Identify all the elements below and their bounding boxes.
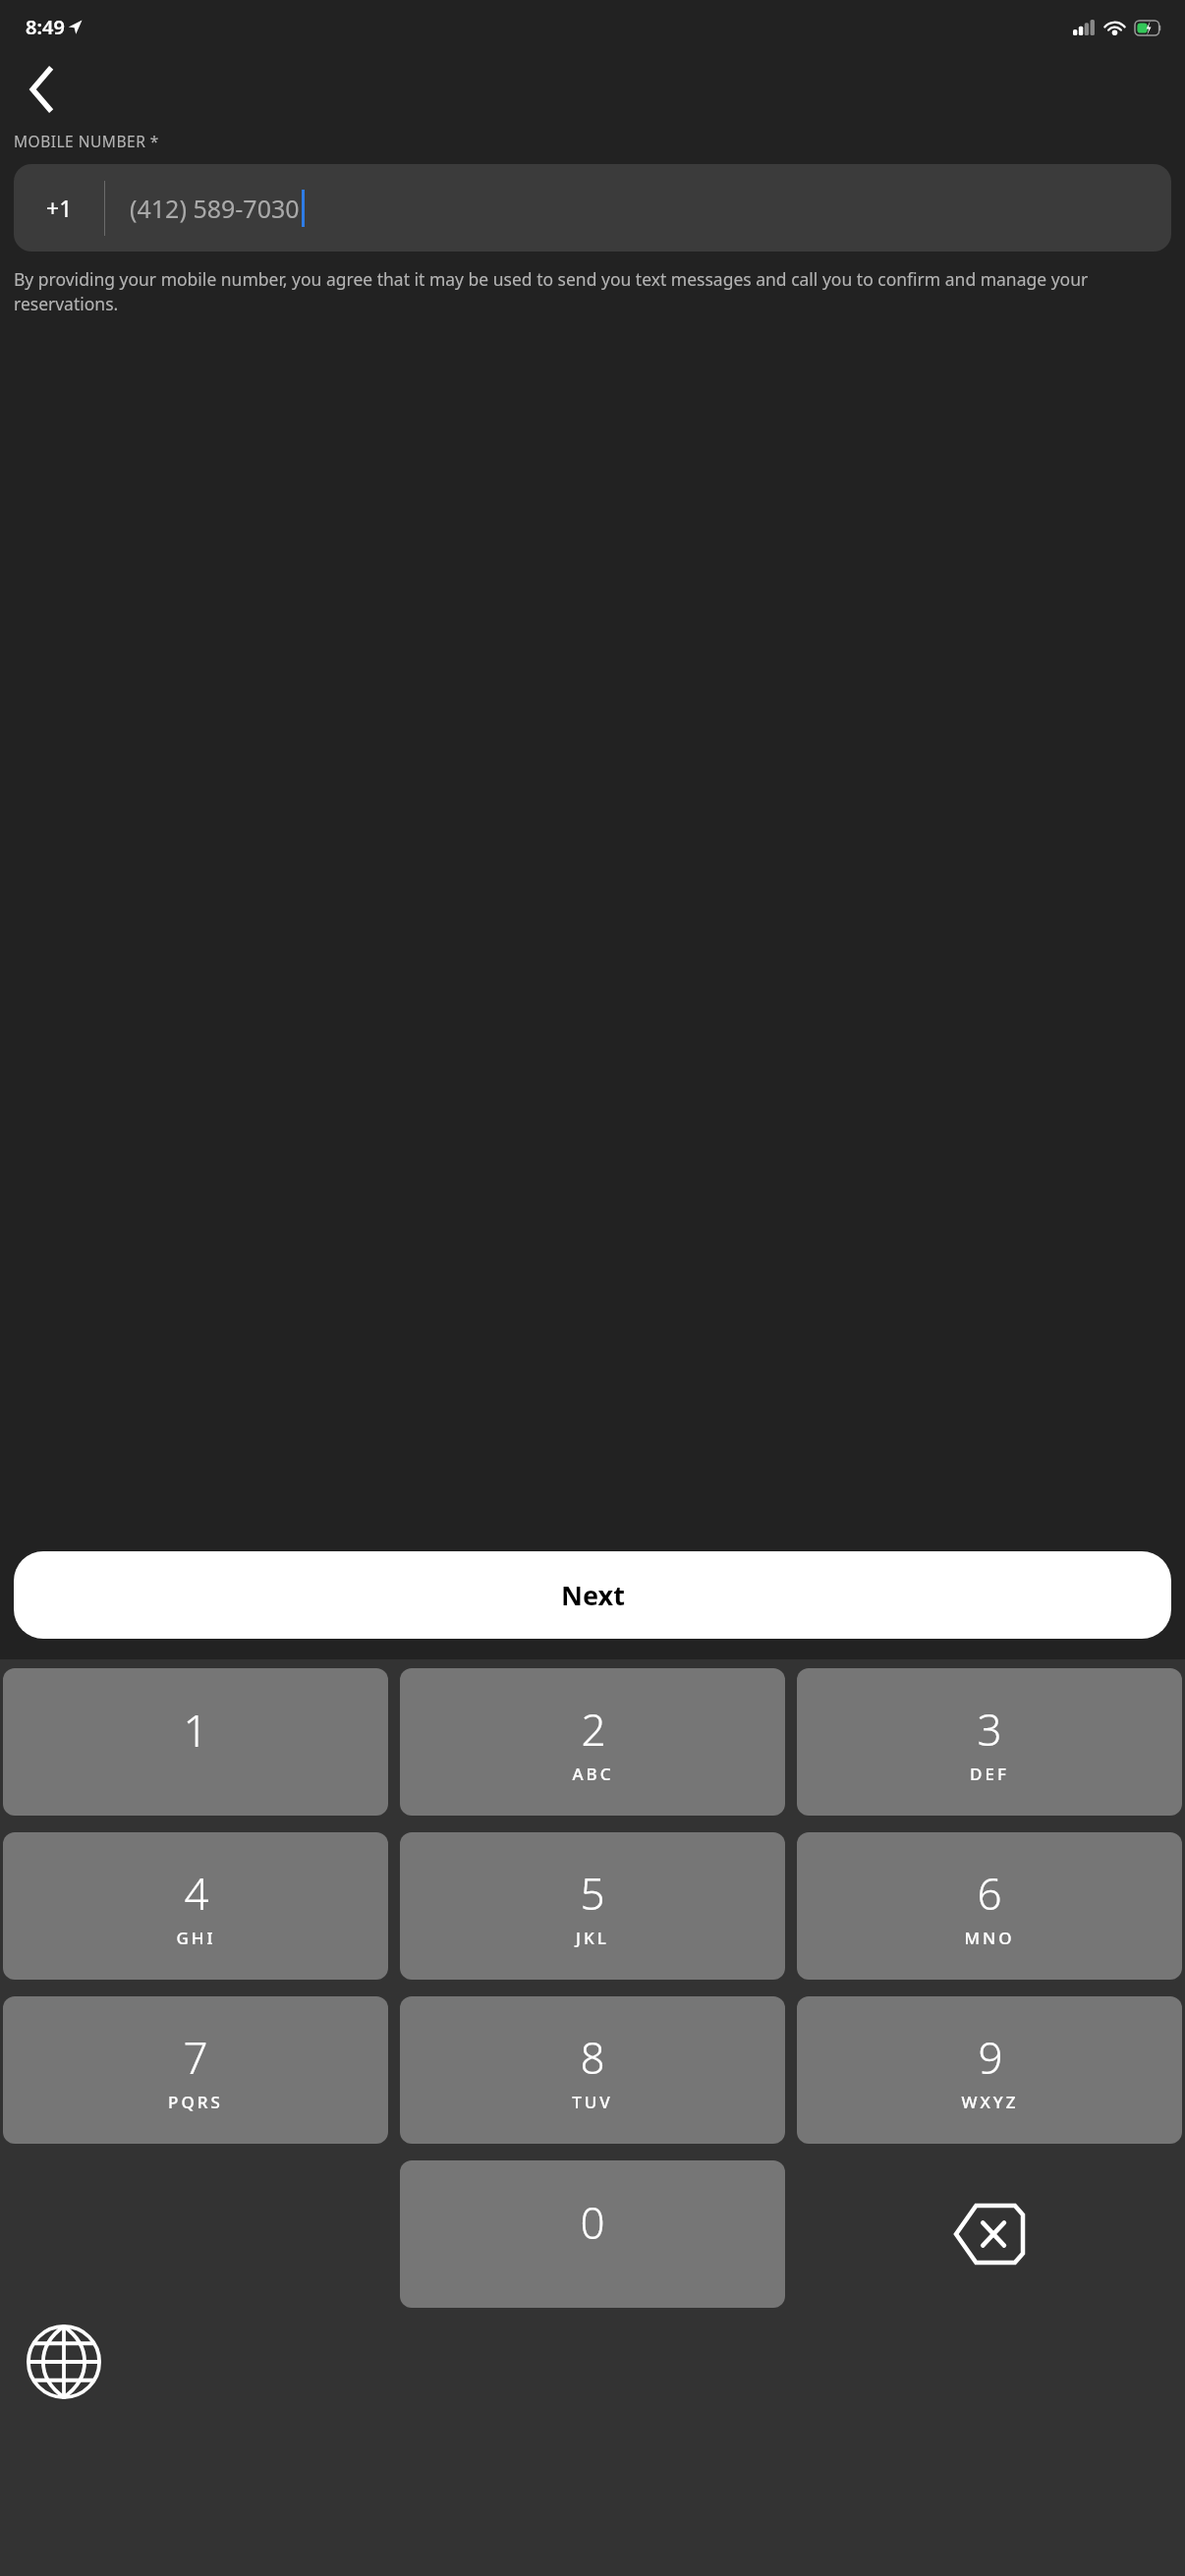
button[interactable]: Change keyboard language (0, 2308, 128, 2416)
staticText: DEF (970, 1763, 1009, 1785)
staticText: Next (561, 1577, 625, 1613)
staticText: 9 (978, 2028, 1003, 2087)
staticText: JKL (576, 1927, 609, 1949)
button[interactable]: 8 (400, 1996, 785, 2144)
staticText: 8 (580, 2028, 605, 2087)
staticText: ABC (572, 1763, 614, 1785)
button[interactable]: +1 (14, 164, 1171, 252)
staticText: 3 (977, 1700, 1002, 1759)
button[interactable]: 1 (3, 1668, 388, 1816)
staticText: 1 (183, 1701, 208, 1760)
staticText: 8:49 (26, 14, 65, 40)
button[interactable]: Back (6, 54, 77, 125)
staticText: +1 (46, 193, 73, 223)
staticText: TUV (572, 2091, 613, 2113)
staticText: GHI (176, 1927, 216, 1949)
staticText: (412) 589-7030 (130, 192, 300, 225)
button[interactable]: 9 (797, 1996, 1182, 2144)
staticText: PQRS (168, 2091, 223, 2113)
button[interactable]: 4 (3, 1832, 388, 1980)
staticText: 5 (580, 1864, 605, 1923)
staticText: 4 (184, 1864, 209, 1923)
staticText: 7 (183, 2028, 208, 2087)
staticText: 2 (581, 1700, 606, 1759)
staticText: MNO (964, 1927, 1015, 1949)
button[interactable]: Delete (797, 2160, 1182, 2308)
staticText: MOBILE NUMBER * (14, 131, 159, 151)
staticText: By providing your mobile number, you agr… (14, 267, 1169, 316)
button[interactable]: 3 (797, 1668, 1182, 1816)
button[interactable]: 7 (3, 1996, 388, 2144)
button[interactable]: 5 (400, 1832, 785, 1980)
button[interactable]: 0 (400, 2160, 785, 2308)
button[interactable]: Next (14, 1551, 1171, 1639)
staticText: 6 (977, 1864, 1002, 1923)
staticText: 0 (580, 2193, 605, 2252)
button[interactable]: 2 (400, 1668, 785, 1816)
staticText: WXYZ (961, 2091, 1019, 2113)
button[interactable]: 6 (797, 1832, 1182, 1980)
